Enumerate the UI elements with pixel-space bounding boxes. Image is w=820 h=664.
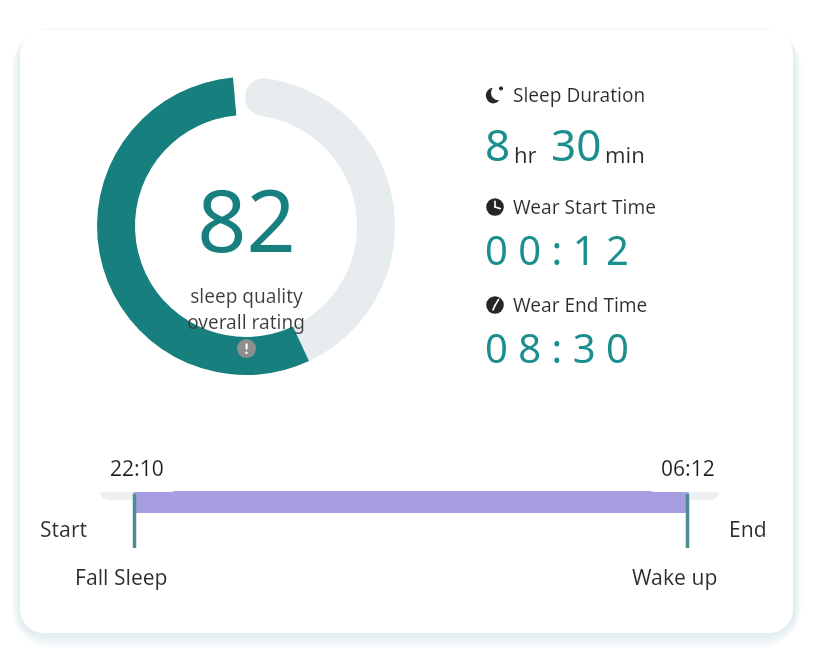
staticText: 30	[551, 114, 602, 174]
staticText: Wear End Time	[513, 292, 648, 318]
staticText: End	[729, 515, 767, 544]
staticText: 8	[485, 114, 511, 174]
staticText: hr	[514, 139, 537, 169]
staticText: 06:12	[661, 454, 715, 483]
staticText: Fall Sleep	[75, 563, 168, 592]
staticText: Sleep Duration	[513, 82, 646, 108]
staticText: 82	[197, 160, 296, 277]
staticText: 0 8 : 3 0	[485, 320, 629, 374]
staticText: min	[605, 139, 645, 169]
staticText: Wake up	[632, 563, 718, 592]
button[interactable]: More information about sleep quality	[237, 339, 256, 358]
staticText: 0 0 : 1 2	[485, 222, 629, 276]
staticText: sleep quality	[190, 283, 303, 309]
button[interactable]: 22:10	[93, 444, 181, 492]
staticText: Wear Start Time	[513, 194, 656, 220]
staticText: 22:10	[110, 454, 164, 483]
button[interactable]: 06:12	[644, 444, 732, 492]
staticText: Start	[40, 515, 88, 544]
staticText: overall rating	[187, 309, 305, 335]
